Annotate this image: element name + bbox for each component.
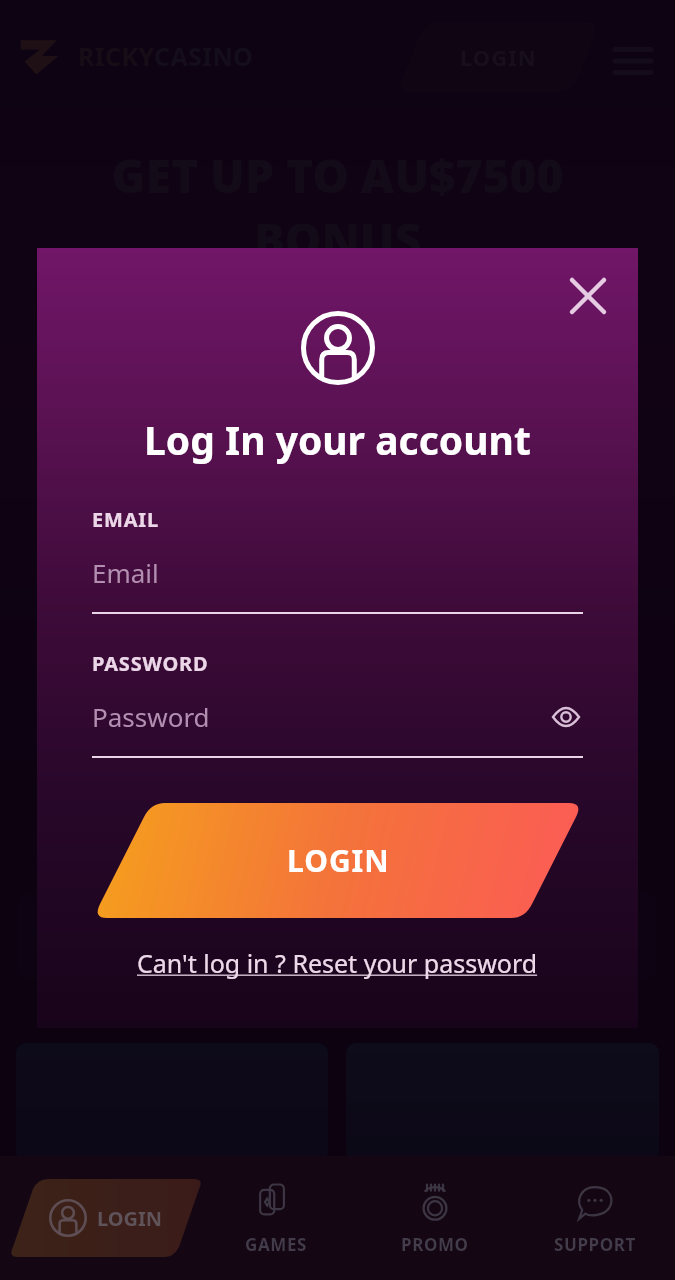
staticText: GAMES xyxy=(245,1233,307,1256)
button[interactable]: LOGIN xyxy=(8,1179,204,1257)
staticText: PROMO xyxy=(401,1233,469,1256)
button[interactable]: Show password xyxy=(549,700,583,734)
staticText: GET UP TO AU$7500 BONUS xyxy=(0,144,675,271)
staticText: EMAIL xyxy=(92,506,159,533)
staticText: PASSWORD xyxy=(92,650,209,677)
button[interactable]: PROMO xyxy=(355,1156,515,1280)
staticText: Email xyxy=(92,555,583,590)
staticText: LOGIN xyxy=(97,1205,163,1232)
staticText: LOGIN xyxy=(287,840,390,881)
staticText: Password xyxy=(92,699,549,734)
staticText: RICKYCASINO xyxy=(78,39,254,73)
staticText: Log In your account xyxy=(144,413,531,466)
button[interactable]: SUPPORT xyxy=(515,1156,675,1280)
button[interactable]: Can't log in ? Reset your password xyxy=(131,940,544,986)
staticText: LOGIN xyxy=(460,42,537,72)
button[interactable]: Menu xyxy=(610,38,656,84)
button[interactable]: GAMES xyxy=(196,1156,355,1280)
button[interactable]: LOGIN xyxy=(93,803,583,918)
staticText: SUPPORT xyxy=(554,1233,636,1256)
button[interactable]: Password xyxy=(92,699,583,758)
button[interactable]: Close xyxy=(562,270,614,322)
staticText: Can't log in ? Reset your password xyxy=(137,946,538,980)
button[interactable]: Email xyxy=(92,555,583,614)
